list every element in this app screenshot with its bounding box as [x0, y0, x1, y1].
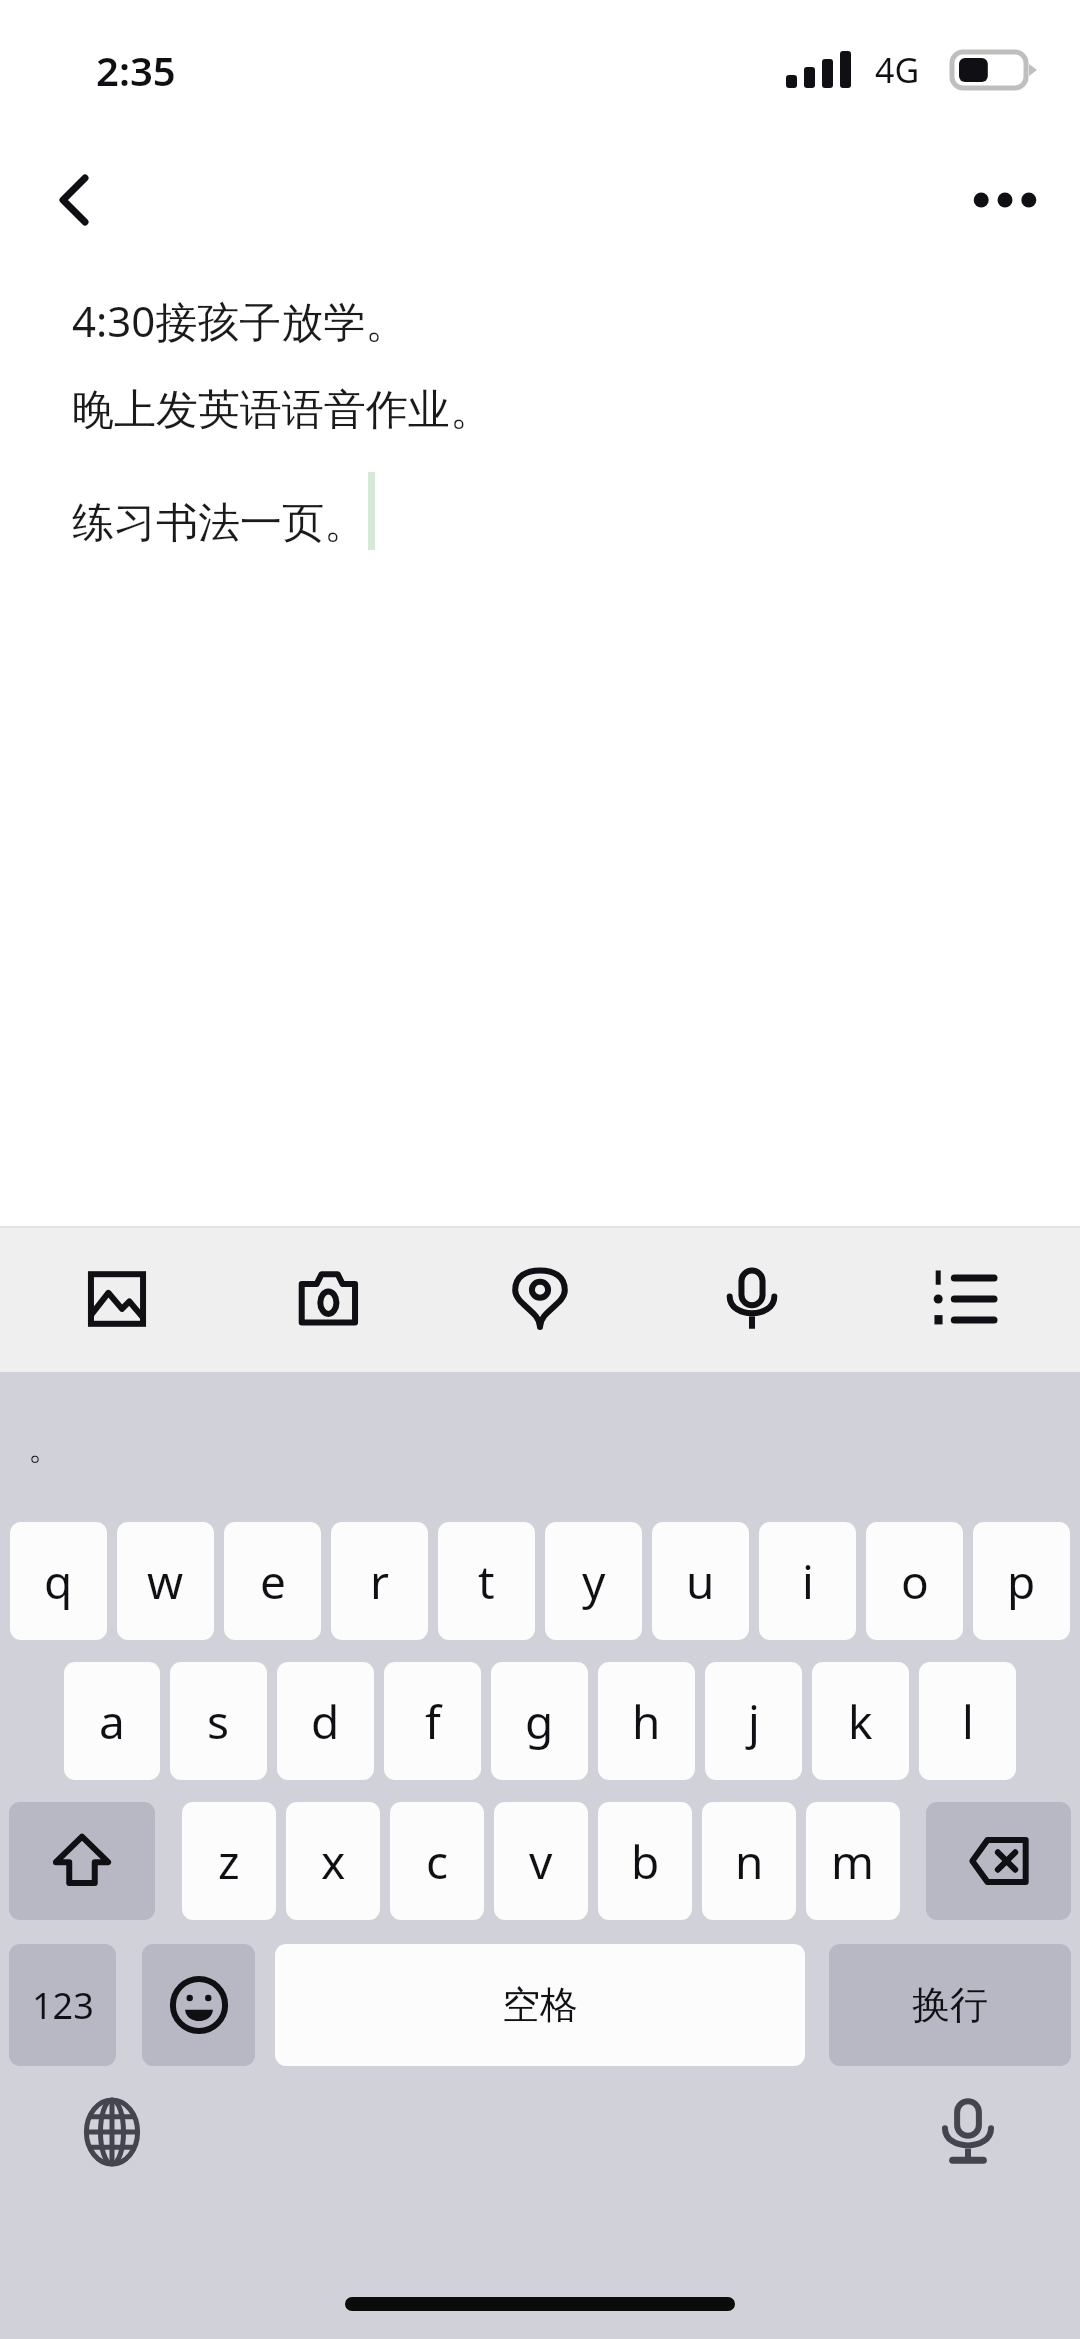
staticText: d: [311, 1690, 340, 1753]
button[interactable]: u: [652, 1522, 749, 1640]
staticText: g: [525, 1690, 554, 1753]
staticText: 。: [28, 1426, 62, 1469]
button[interactable]: 空格: [275, 1944, 805, 2066]
staticText: k: [848, 1690, 873, 1753]
staticText: e: [260, 1550, 286, 1613]
staticText: l: [962, 1690, 974, 1753]
staticText: 晚上发英语语音作业。: [72, 384, 492, 437]
button[interactable]: 。: [10, 1412, 80, 1482]
button[interactable]: Voice input: [697, 1244, 807, 1354]
button[interactable]: z: [182, 1802, 276, 1920]
button[interactable]: b: [598, 1802, 692, 1920]
button[interactable]: p: [973, 1522, 1070, 1640]
button[interactable]: Switch keyboard: [62, 2082, 162, 2182]
button[interactable]: w: [117, 1522, 214, 1640]
staticText: i: [802, 1550, 814, 1613]
button[interactable]: Insert photo: [62, 1244, 172, 1354]
button[interactable]: Back: [20, 145, 130, 255]
button[interactable]: e: [224, 1522, 321, 1640]
button[interactable]: m: [806, 1802, 900, 1920]
button[interactable]: r: [331, 1522, 428, 1640]
staticText: 练习书法一页。: [72, 497, 366, 550]
staticText: s: [207, 1690, 230, 1753]
staticText: w: [147, 1550, 184, 1613]
button[interactable]: q: [10, 1522, 107, 1640]
staticText: r: [370, 1550, 389, 1613]
button[interactable]: l: [919, 1662, 1016, 1780]
button[interactable]: x: [286, 1802, 380, 1920]
button[interactable]: 换行: [829, 1944, 1071, 2066]
staticText: 空格: [502, 1981, 578, 2029]
button[interactable]: Dictation: [918, 2082, 1018, 2182]
button[interactable]: Emoji: [142, 1944, 255, 2066]
button[interactable]: n: [702, 1802, 796, 1920]
staticText: p: [1007, 1550, 1036, 1613]
staticText: 4:30接孩子放学。: [72, 292, 408, 349]
button[interactable]: Location: [485, 1244, 595, 1354]
button[interactable]: o: [866, 1522, 963, 1640]
staticText: c: [426, 1830, 449, 1893]
staticText: n: [735, 1830, 764, 1893]
staticText: m: [831, 1830, 875, 1893]
button[interactable]: Shift: [9, 1802, 155, 1920]
button[interactable]: v: [494, 1802, 588, 1920]
button[interactable]: s: [170, 1662, 267, 1780]
button[interactable]: a: [64, 1662, 160, 1780]
button[interactable]: 123: [9, 1944, 116, 2066]
staticText: v: [529, 1830, 553, 1893]
button[interactable]: j: [705, 1662, 802, 1780]
staticText: q: [44, 1550, 73, 1613]
button[interactable]: h: [598, 1662, 695, 1780]
button[interactable]: d: [277, 1662, 374, 1780]
button[interactable]: g: [491, 1662, 588, 1780]
staticText: j: [748, 1690, 760, 1753]
button[interactable]: Backspace: [926, 1802, 1071, 1920]
staticText: b: [631, 1830, 660, 1893]
button[interactable]: Checklist: [908, 1244, 1018, 1354]
staticText: x: [321, 1830, 346, 1893]
button[interactable]: c: [390, 1802, 484, 1920]
button[interactable]: k: [812, 1662, 909, 1780]
button[interactable]: y: [545, 1522, 642, 1640]
staticText: 换行: [912, 1981, 988, 2029]
staticText: 4G: [875, 47, 920, 93]
staticText: u: [686, 1550, 715, 1613]
staticText: t: [478, 1550, 495, 1613]
staticText: f: [425, 1690, 441, 1753]
button[interactable]: t: [438, 1522, 535, 1640]
staticText: o: [901, 1550, 929, 1613]
button[interactable]: i: [759, 1522, 856, 1640]
staticText: z: [218, 1830, 240, 1893]
staticText: 2:35: [96, 43, 176, 97]
button[interactable]: f: [384, 1662, 481, 1780]
staticText: a: [99, 1690, 125, 1753]
button[interactable]: More options: [950, 145, 1060, 255]
button[interactable]: Take photo: [274, 1244, 384, 1354]
staticText: h: [632, 1690, 661, 1753]
staticText: y: [582, 1550, 606, 1613]
staticText: 123: [32, 1981, 94, 2030]
